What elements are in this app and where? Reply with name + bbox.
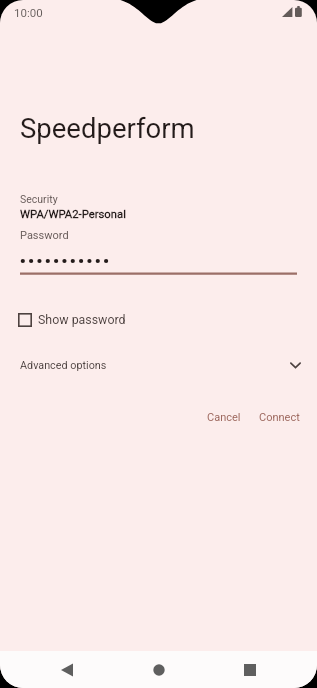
- staticText: 10:00: [14, 6, 43, 19]
- staticText: Show password: [38, 312, 126, 327]
- button[interactable]: Recent apps: [231, 651, 268, 688]
- staticText: Advanced options: [20, 359, 107, 372]
- staticText: Password: [20, 229, 69, 242]
- staticText: Speedperform: [20, 112, 195, 144]
- button[interactable]: Connect: [251, 404, 308, 431]
- staticText: Connect: [259, 411, 300, 424]
- button[interactable]: Back: [48, 651, 85, 688]
- button[interactable]: Advanced options: [0, 352, 317, 379]
- button[interactable]: Password field: [0, 250, 317, 280]
- staticText: Security: [20, 193, 58, 205]
- button[interactable]: Show password: [0, 305, 317, 334]
- staticText: WPA/WPA2-Personal: [20, 208, 126, 221]
- button[interactable]: Cancel: [199, 404, 249, 431]
- button[interactable]: Home: [140, 651, 177, 688]
- staticText: Cancel: [207, 411, 241, 424]
